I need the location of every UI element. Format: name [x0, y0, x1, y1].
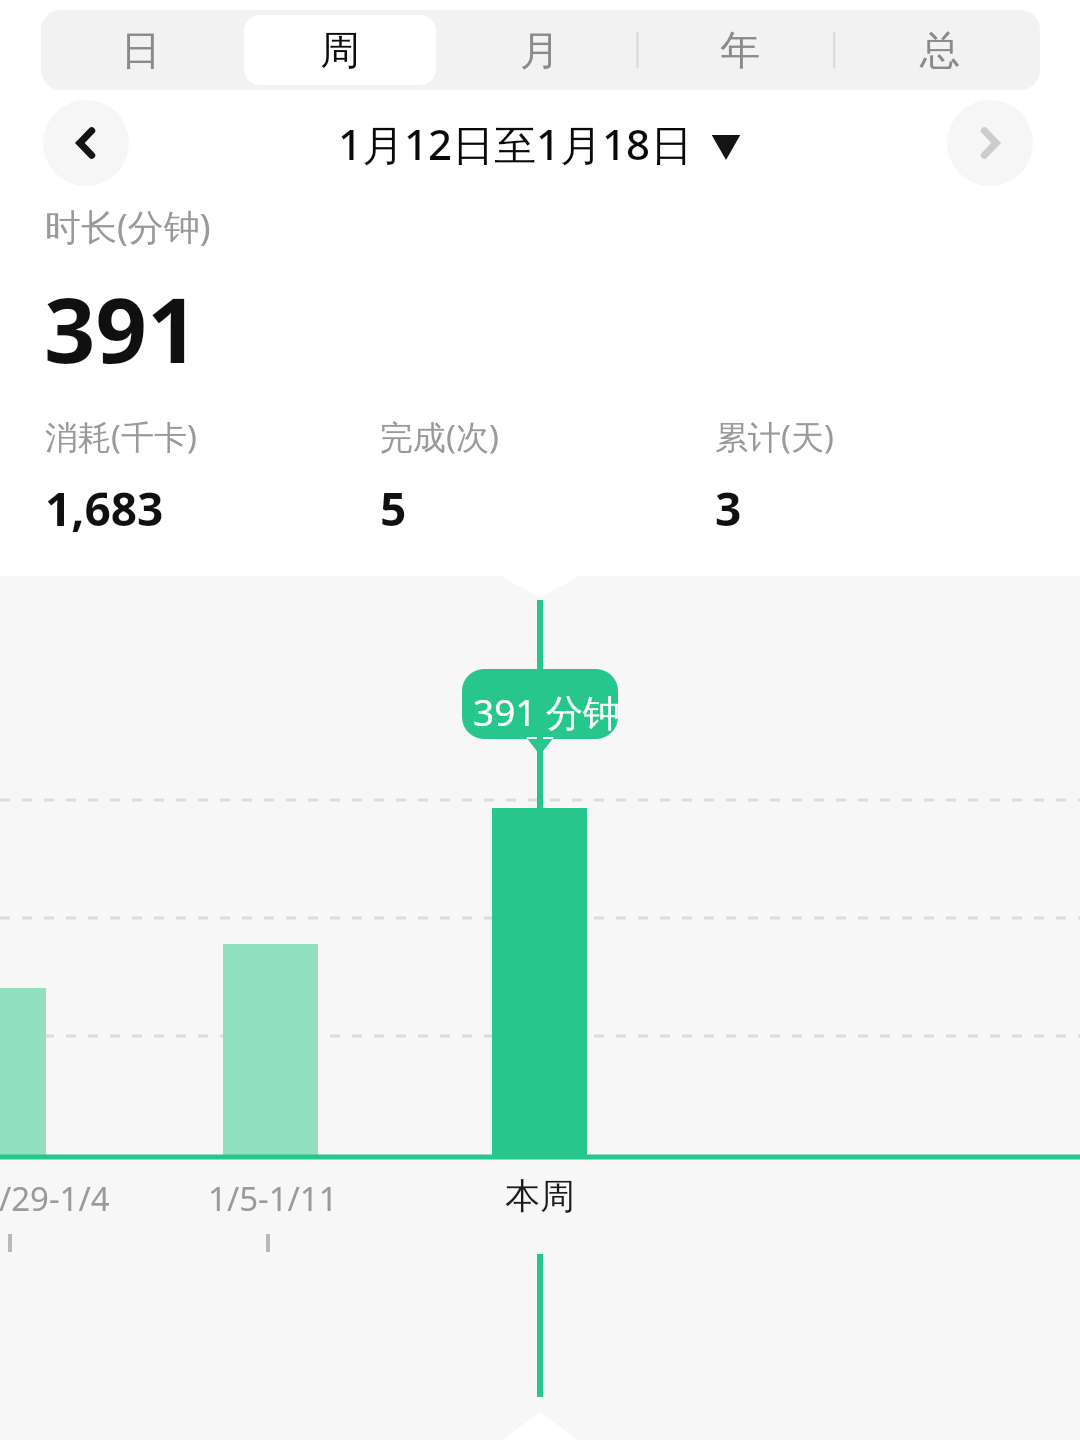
staticText: 完成(次): [380, 414, 499, 459]
staticText: 时长(分钟): [45, 202, 211, 251]
staticText: 日: [121, 25, 161, 75]
staticText: 3: [715, 477, 742, 540]
staticText: 1/5-1/11: [208, 1176, 338, 1221]
button[interactable]: 年: [644, 15, 836, 85]
staticText: 总: [920, 25, 960, 75]
staticText: 2/29-1/4: [0, 1176, 110, 1221]
staticText: 累计(天): [715, 414, 834, 459]
staticText: 391 分钟: [473, 686, 621, 737]
button[interactable]: 总: [844, 15, 1036, 85]
staticText: 391: [44, 267, 199, 390]
staticText: 5: [380, 477, 407, 540]
staticText: 年: [720, 25, 760, 75]
staticText: 本周: [505, 1174, 575, 1218]
button[interactable]: 月: [444, 15, 636, 85]
staticText: 月: [520, 25, 560, 75]
staticText: 周: [320, 25, 360, 75]
button[interactable]: 日: [45, 15, 236, 85]
staticText: 1,683: [45, 477, 164, 540]
button[interactable]: Previous week: [43, 100, 129, 186]
button[interactable]: Next week: [947, 100, 1033, 186]
button[interactable]: 周: [244, 15, 436, 85]
staticText: 消耗(千卡): [45, 414, 197, 459]
button[interactable]: 1月12日至1月18日: [338, 115, 743, 172]
staticText: 1月12日至1月18日: [338, 115, 693, 172]
button[interactable]: 2/29-1/4: [0, 576, 1080, 1440]
